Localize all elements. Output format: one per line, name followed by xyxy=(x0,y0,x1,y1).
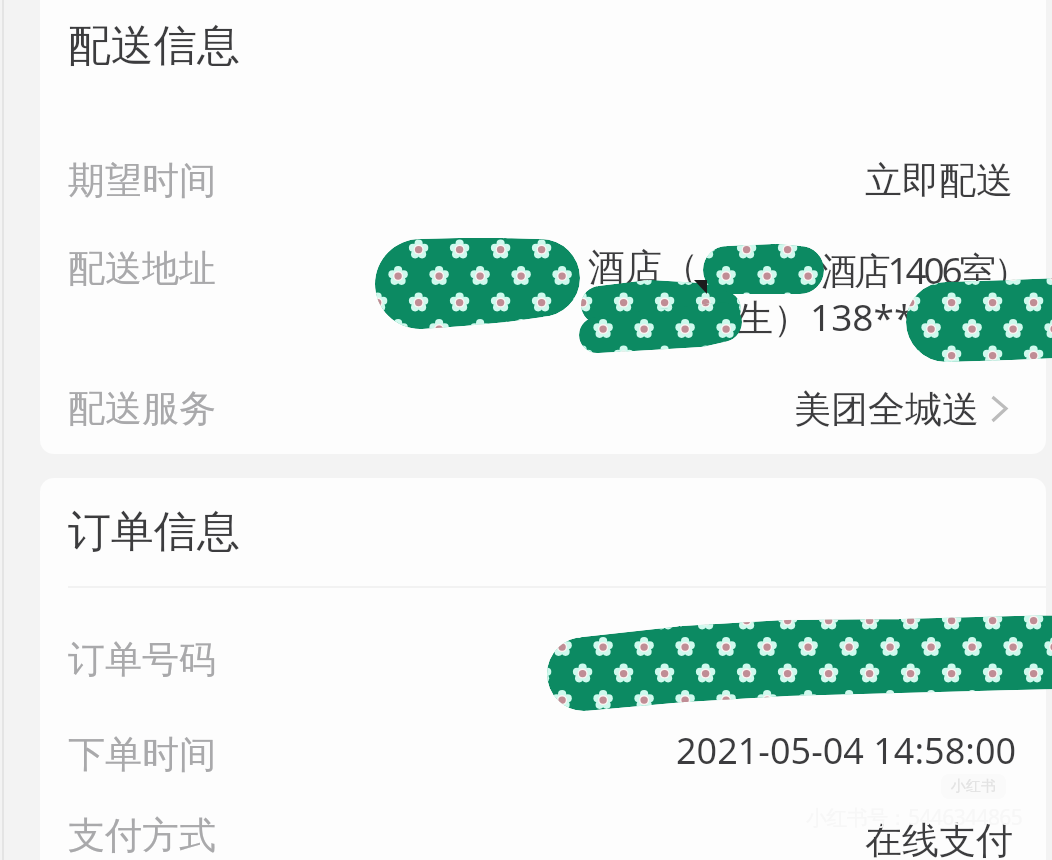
button[interactable]: 配送信息 xyxy=(40,5,1046,75)
staticText: 小红书号：5446344865 xyxy=(806,803,1023,832)
other: 查看配送服务 xyxy=(984,387,1024,427)
staticText: 配送信息 xyxy=(68,19,240,73)
staticText: 小红书 xyxy=(951,777,996,796)
staticText: 2021-05-04 14:58:00 xyxy=(676,726,1017,775)
staticText: 配送地址 xyxy=(68,245,216,292)
button[interactable]: 订单号码 xyxy=(0,614,1046,694)
staticText: 订单信息 xyxy=(68,505,240,559)
staticText: 支付方式 xyxy=(68,812,216,859)
button[interactable]: 配送服务 xyxy=(0,363,1046,443)
button[interactable]: 支付方式 xyxy=(0,790,1046,860)
button[interactable]: 订单信息 xyxy=(40,491,1046,561)
staticText: 下单时间 xyxy=(68,731,216,778)
staticText: 在线支付 xyxy=(865,817,1013,860)
staticText: 立即配送 xyxy=(865,157,1013,204)
staticText: 酒店（ xyxy=(588,244,699,291)
staticText: 生）138*** xyxy=(736,291,935,342)
staticText: 酒店1406室） xyxy=(820,244,1028,295)
button[interactable]: 配送地址 xyxy=(0,223,1046,319)
staticText: 配送服务 xyxy=(68,385,216,432)
staticText: 期望时间 xyxy=(68,157,216,204)
button[interactable]: 期望时间 xyxy=(0,135,1046,215)
button[interactable]: 下单时间 xyxy=(0,709,1046,789)
staticText: 美团全城送 xyxy=(794,386,979,433)
staticText: 订单号码 xyxy=(68,636,216,683)
